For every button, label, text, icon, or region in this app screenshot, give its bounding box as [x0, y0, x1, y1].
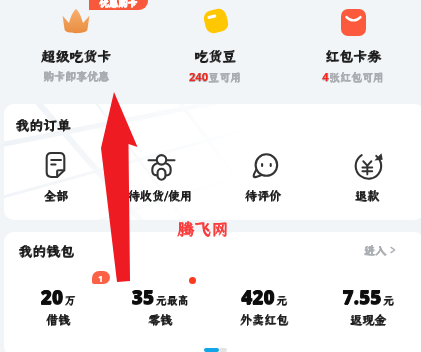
- staticText: 借钱: [0, 312, 158, 328]
- button[interactable]: [12, 148, 100, 208]
- staticText: 优惠购卡: [99, 0, 138, 9]
- button[interactable]: [145, 0, 279, 96]
- button[interactable]: [12, 278, 104, 340]
- staticText: 腾飞网: [177, 217, 228, 239]
- staticText: 1: [98, 272, 104, 284]
- button[interactable]: [6, 0, 140, 96]
- staticText: 240豆可用: [115, 69, 315, 84]
- staticText: 零钱: [60, 312, 260, 328]
- button[interactable]: 进入: [360, 240, 401, 260]
- button[interactable]: [116, 148, 204, 208]
- staticText: 待评价: [163, 188, 363, 204]
- other: 红包卡券: [341, 9, 366, 36]
- staticText: 红包卡券: [253, 47, 421, 65]
- button[interactable]: 优惠购卡: [89, 0, 148, 10]
- staticText: 超级吃货卡: [0, 47, 176, 65]
- other: 全部订单: [45, 152, 66, 178]
- other: 待收货/使用: [148, 153, 175, 181]
- staticText: 进入: [364, 243, 386, 257]
- staticText: 外卖红包: [164, 312, 364, 328]
- staticText: 返现金: [268, 312, 421, 328]
- other: 超级吃货卡: [62, 8, 90, 34]
- button[interactable]: [219, 148, 307, 208]
- staticText: 吃货豆: [115, 47, 315, 65]
- staticText: 购卡即享优惠: [0, 69, 176, 83]
- button[interactable]: [322, 278, 414, 340]
- other: 吃货豆: [201, 6, 231, 36]
- staticText: 全部: [0, 188, 156, 204]
- staticText: 4张红包可用: [253, 69, 421, 84]
- staticText: 7.55 元: [268, 284, 421, 310]
- staticText: 待收货/使用: [60, 188, 260, 204]
- staticText: 420 元: [164, 284, 364, 310]
- staticText: 35 元最高: [60, 284, 260, 310]
- staticText: 退款: [267, 188, 421, 204]
- staticText: 我的钱包: [18, 242, 74, 260]
- other: 退款: [355, 152, 383, 180]
- other: 待评价: [251, 153, 279, 181]
- staticText: 20 万: [0, 284, 158, 310]
- button[interactable]: [284, 0, 418, 96]
- button[interactable]: [114, 278, 206, 340]
- staticText: 我的订单: [15, 116, 71, 134]
- button[interactable]: [218, 278, 310, 340]
- button[interactable]: [323, 148, 411, 208]
